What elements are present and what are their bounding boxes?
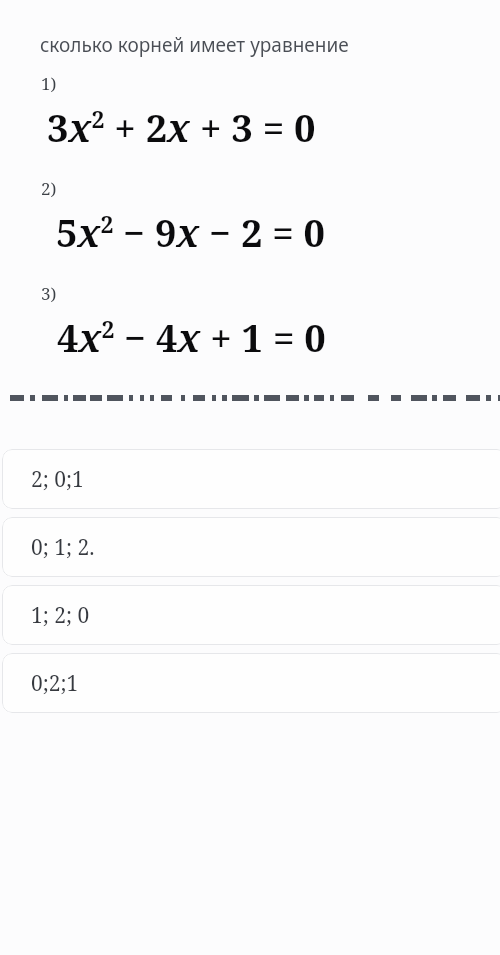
staticText: 1; 2; 0 bbox=[31, 601, 90, 630]
button[interactable]: 1; 2; 0 bbox=[2, 585, 500, 645]
staticText: 2) bbox=[41, 177, 57, 200]
staticText: 3) bbox=[41, 282, 57, 305]
staticText: 4x2 − 4x + 1 = 0 bbox=[57, 311, 326, 363]
button[interactable]: 0; 1; 2. bbox=[2, 517, 500, 577]
staticText: 2; 0;1 bbox=[31, 465, 84, 494]
button[interactable]: 0;2;1 bbox=[2, 653, 500, 713]
button[interactable]: 2; 0;1 bbox=[2, 449, 500, 509]
staticText: сколько корней имеет уравнение bbox=[40, 32, 349, 58]
staticText: 0;2;1 bbox=[31, 669, 79, 698]
staticText: 1) bbox=[41, 72, 57, 95]
staticText: 0; 1; 2. bbox=[31, 533, 95, 562]
staticText: 3x2 + 2x + 3 = 0 bbox=[47, 101, 316, 153]
staticText: 5x2 − 9x − 2 = 0 bbox=[56, 206, 326, 258]
